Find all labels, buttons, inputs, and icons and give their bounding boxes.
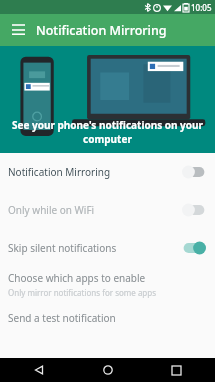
staticText: Choose which apps to enable <box>8 271 146 285</box>
button[interactable]: Notification Mirroring <box>0 153 215 191</box>
staticText: Only while on WiFi <box>8 203 181 217</box>
button[interactable]: Only while on WiFi <box>0 191 215 229</box>
button[interactable]: Open navigation menu <box>7 19 29 41</box>
button[interactable]: Choose which apps to enable <box>0 267 215 301</box>
staticText: Send a test notification <box>8 311 116 325</box>
staticText: 10:05 <box>191 2 212 13</box>
staticText: Skip silent notifications <box>8 241 181 255</box>
staticText: Notification Mirroring <box>36 22 167 39</box>
button[interactable]: Back <box>26 358 52 382</box>
button[interactable]: Recent apps <box>163 358 189 382</box>
button[interactable]: Send a test notification <box>0 301 215 335</box>
button[interactable]: Home <box>95 358 121 382</box>
staticText: Notification Mirroring <box>8 165 181 179</box>
staticText: See your phone's notifications on your c… <box>0 118 215 146</box>
button[interactable]: Skip silent notifications <box>0 229 215 267</box>
staticText: Only mirror notifications for some apps <box>8 287 157 298</box>
